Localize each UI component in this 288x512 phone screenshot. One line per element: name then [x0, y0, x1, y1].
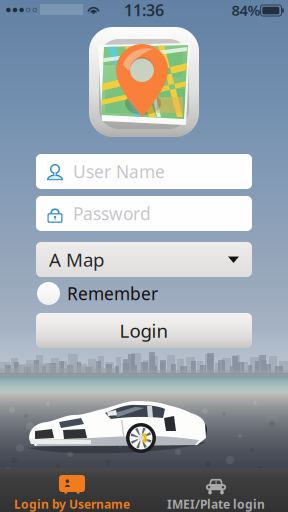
button[interactable]: Remember: [36, 281, 252, 306]
button[interactable]: Login: [36, 313, 252, 348]
staticText: Remember: [67, 282, 158, 305]
button[interactable]: Password: [36, 196, 252, 231]
staticText: A Map: [49, 247, 104, 272]
staticText: IMEI/Plate login: [167, 496, 265, 512]
staticText: Login: [119, 318, 168, 343]
staticText: Password: [73, 202, 151, 225]
button[interactable]: A Map: [36, 242, 252, 277]
button[interactable]: IMEI/Plate login: [144, 468, 288, 512]
staticText: 11:36: [124, 0, 164, 21]
staticText: 84%: [231, 0, 260, 20]
staticText: Login by Username: [14, 496, 130, 512]
staticText: User Name: [73, 160, 165, 183]
button[interactable]: User Name: [36, 154, 252, 189]
button[interactable]: Login by Username: [0, 468, 144, 512]
